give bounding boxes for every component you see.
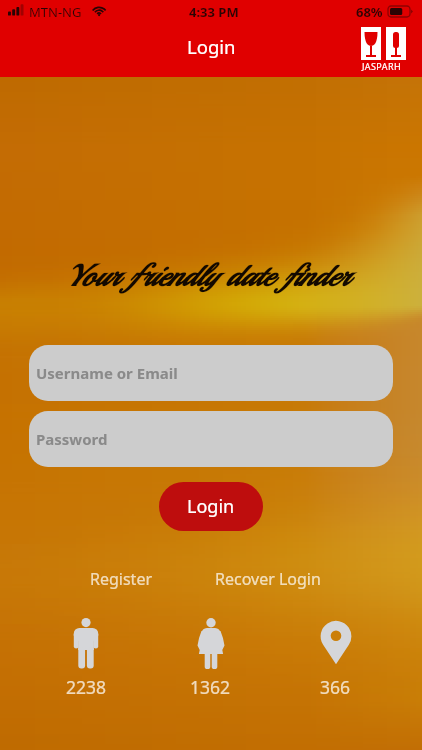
button[interactable]: 366 bbox=[273, 618, 398, 699]
button[interactable]: Password bbox=[29, 411, 393, 467]
staticText: Login bbox=[187, 34, 236, 59]
staticText: 1362 bbox=[190, 675, 231, 699]
button[interactable]: Login bbox=[159, 482, 263, 531]
staticText: 68% bbox=[356, 3, 383, 21]
button[interactable]: 1362 bbox=[148, 618, 273, 699]
staticText: Password bbox=[36, 429, 108, 449]
staticText: 366 bbox=[320, 675, 351, 699]
staticText: Login bbox=[187, 494, 235, 519]
staticText: 2238 bbox=[66, 675, 107, 699]
button[interactable]: Jasparh logo bbox=[358, 25, 408, 73]
button[interactable]: 2238 bbox=[24, 618, 148, 699]
staticText: 4:33 PM bbox=[189, 3, 239, 21]
button[interactable]: Recover Login bbox=[215, 568, 321, 590]
staticText: MTN-NG bbox=[29, 3, 82, 21]
staticText: Your friendly date finder bbox=[65, 257, 348, 295]
button[interactable]: Username or Email bbox=[29, 345, 393, 401]
staticText: JASPARH bbox=[362, 60, 401, 72]
staticText: Recover Login bbox=[215, 568, 321, 590]
staticText: Register bbox=[90, 568, 153, 590]
staticText: Username or Email bbox=[36, 363, 178, 383]
button[interactable]: Register bbox=[90, 568, 153, 590]
